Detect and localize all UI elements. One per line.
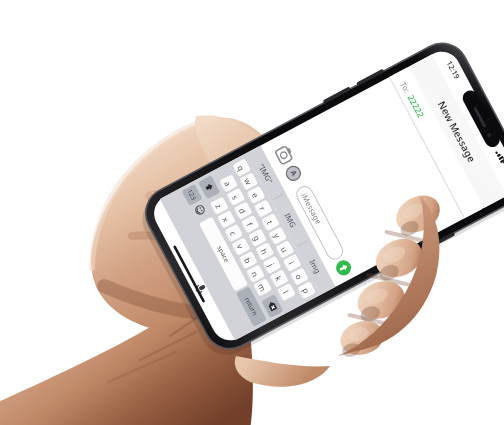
button[interactable]: Hand holding phone showing New Message s…: [0, 0, 504, 425]
